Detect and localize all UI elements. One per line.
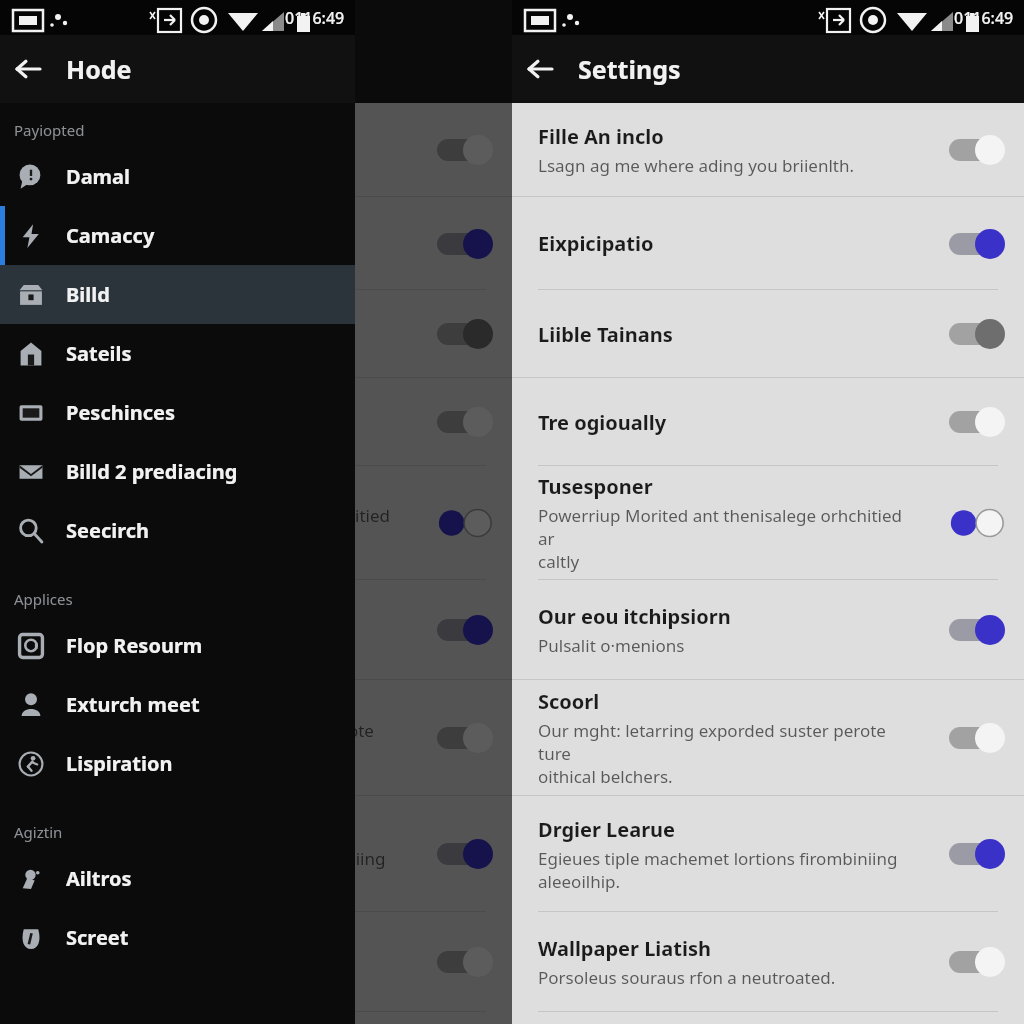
button[interactable]: Eixpicipatio (0, 197, 512, 290)
other: Toggle (945, 405, 1007, 439)
staticText: Our eou itchipsiorn (538, 603, 731, 630)
other: Toggle (433, 945, 495, 979)
staticText: Peschinces (66, 399, 175, 426)
staticText: Our eou itchipsiorn (26, 603, 219, 630)
button[interactable]: Billd 2 prediacing (0, 442, 355, 501)
other: Toggle (433, 227, 495, 261)
button[interactable]: Billd (0, 265, 355, 324)
button[interactable]: Tre ogioually (0, 378, 512, 466)
button[interactable]: Damal (0, 147, 355, 206)
other: Toggle (945, 837, 1007, 871)
staticText: Flop Resourm (66, 632, 203, 659)
button[interactable]: Ailtros (0, 849, 355, 908)
staticText: Camaccy (66, 222, 155, 249)
staticText: Billd (66, 281, 110, 308)
button[interactable]: Screet (0, 908, 355, 967)
button[interactable]: Fille An inclo (0, 103, 512, 197)
staticText: Our mght: letarring exporded suster pero… (538, 719, 918, 788)
button[interactable]: Liible Tainans (0, 290, 512, 378)
staticText: Damal (66, 163, 131, 190)
staticText: Liible Tainans (538, 321, 673, 348)
button[interactable]: Wallpaper Liatish (0, 912, 512, 1012)
other: Toggle (433, 721, 495, 755)
staticText: 0116:49 (954, 7, 1014, 29)
staticText: Tre ogioually (538, 409, 667, 436)
other: Toggle (945, 227, 1007, 261)
staticText: Exturch meet (66, 691, 200, 718)
staticText: Lsagn ag me where ading you briienlth. (538, 154, 854, 177)
button[interactable]: Tusesponer (512, 466, 1024, 580)
staticText: Scoorl (538, 688, 600, 715)
button[interactable]: Camaccy (0, 206, 355, 265)
button[interactable]: Scoorl (512, 680, 1024, 796)
staticText: Applices (14, 589, 73, 609)
staticText: Seecirch (66, 517, 150, 544)
staticText: Screet (66, 924, 129, 951)
staticText: Drgier Learue (26, 816, 164, 843)
button[interactable]: Liible Tainans (512, 290, 1024, 378)
other: Toggle (945, 317, 1007, 351)
button[interactable]: Lispiration (0, 734, 355, 793)
other: Toggle (433, 133, 495, 167)
button[interactable]: Back (512, 41, 568, 97)
staticText: Fille An inclo (26, 123, 152, 150)
button[interactable]: Flop Resourm (0, 616, 355, 675)
staticText: Powerriup Morited ant thenisalege orhchi… (538, 504, 918, 573)
button[interactable]: Fille An inclo (512, 103, 1024, 197)
button[interactable]: Exturch meet (0, 675, 355, 734)
staticText: Drgier Learue (538, 816, 676, 843)
staticText: Powerriup Morited ant thenisalege orhchi… (26, 504, 406, 573)
button[interactable]: Our eou itchipsiorn (512, 580, 1024, 680)
staticText: Tre ogioually (26, 409, 155, 436)
staticText: Payiopted (14, 120, 85, 140)
staticText: Wallpaper Liatish (26, 935, 200, 962)
staticText: Tusesponer (538, 473, 653, 500)
staticText: Agiztin (14, 822, 63, 842)
other: Toggle (433, 506, 495, 540)
button[interactable]: Drgier Learue (512, 796, 1024, 912)
other: Toggle (945, 945, 1007, 979)
other: Toggle (945, 133, 1007, 167)
button[interactable]: Scoorl (0, 680, 512, 796)
button[interactable]: Eixpicipatio (512, 197, 1024, 290)
other: Toggle (945, 721, 1007, 755)
staticText: Tusesponer (26, 473, 141, 500)
button[interactable]: Peschinces (0, 383, 355, 442)
button[interactable]: Drgier Learue (0, 796, 512, 912)
other: Toggle (433, 613, 495, 647)
staticText: Settings (578, 52, 681, 86)
staticText: Eixpicipatio (26, 230, 142, 257)
staticText: Pulsalit o·menions (538, 634, 685, 657)
other: Toggle (433, 317, 495, 351)
staticText: Our mght: letarring exporded suster pero… (26, 719, 406, 788)
button[interactable]: Back (0, 41, 56, 97)
button[interactable]: Sateils (0, 324, 355, 383)
staticText: Porsoleus souraus rfon a neutroated. (538, 966, 836, 989)
staticText: Wallpaper Liatish (538, 935, 712, 962)
staticText: 0116:49 (285, 7, 345, 29)
other: Toggle (945, 506, 1007, 540)
button[interactable]: Wallpaper Liatish (512, 912, 1024, 1012)
button[interactable]: Our eou itchipsiorn (0, 580, 512, 680)
staticText: Scoorl (26, 688, 88, 715)
other: Toggle (433, 405, 495, 439)
staticText: Ailtros (66, 865, 132, 892)
staticText: Eixpicipatio (538, 230, 654, 257)
staticText: Liible Tainans (26, 321, 161, 348)
staticText: Egieues tiple machemet lortions firombin… (538, 847, 898, 893)
staticText: Egieues tiple machemet lortions firombin… (26, 847, 386, 893)
staticText: Hode (66, 52, 132, 86)
button[interactable]: Tre ogioually (512, 378, 1024, 466)
staticText: Billd 2 prediacing (66, 458, 238, 485)
other: Toggle (945, 613, 1007, 647)
staticText: Pulsalit o·menions (26, 634, 173, 657)
staticText: Fille An inclo (538, 123, 664, 150)
other: Toggle (433, 837, 495, 871)
staticText: Lsagn ag me where ading you briienlth. (26, 154, 342, 177)
button[interactable]: Seecirch (0, 501, 355, 560)
staticText: Lispiration (66, 750, 173, 777)
staticText: Sateils (66, 340, 132, 367)
button[interactable]: Tusesponer (0, 466, 512, 580)
